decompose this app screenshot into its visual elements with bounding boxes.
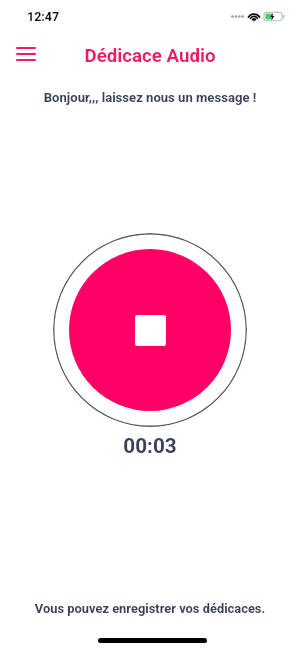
staticText: Bonjour,,, laissez nous un message ! bbox=[0, 90, 300, 105]
staticText: Vous pouvez enregistrer vos dédicaces. bbox=[0, 601, 300, 616]
button[interactable]: Stop recording bbox=[53, 233, 247, 427]
staticText: 00:03 bbox=[0, 434, 300, 458]
other: Wi-Fi bbox=[248, 11, 260, 21]
button[interactable]: Menu bbox=[8, 36, 44, 72]
staticText: Dédicace Audio bbox=[0, 45, 300, 67]
staticText: 12:47 bbox=[27, 9, 60, 24]
other: Battery charging bbox=[264, 11, 286, 22]
